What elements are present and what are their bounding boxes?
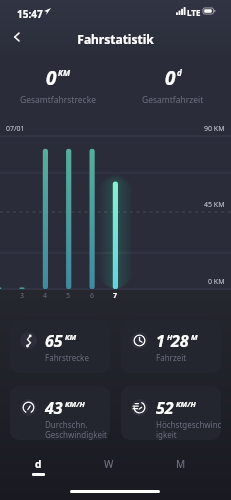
staticText: H	[167, 332, 173, 342]
staticText: 6	[90, 291, 95, 301]
staticText: 0 KM	[208, 277, 225, 287]
button[interactable]: Back	[4, 24, 30, 50]
staticText: d	[177, 67, 182, 78]
staticText: KM	[58, 67, 70, 78]
staticText: 0	[46, 65, 57, 91]
staticText: KM	[65, 332, 77, 342]
staticText: 0	[165, 65, 176, 91]
staticText: Gesamtfahrstrecke	[20, 94, 96, 106]
staticText: Höchstgeschwind igkeit	[156, 419, 221, 440]
button[interactable]: 43	[10, 386, 110, 440]
staticText: 7	[113, 291, 118, 301]
staticText: 1	[156, 330, 165, 352]
button[interactable]: W	[93, 457, 125, 473]
staticText: Durchschn. Geschwindigkeit	[45, 419, 107, 440]
button[interactable]: 52	[121, 386, 221, 440]
staticText: 3	[20, 291, 25, 301]
staticText: 07/01	[6, 124, 25, 134]
staticText: 5	[66, 291, 71, 301]
staticText: 43	[45, 397, 63, 419]
staticText: Fahrstrecke	[45, 352, 89, 363]
staticText: KM/H	[65, 399, 85, 409]
button[interactable]: 65	[10, 319, 110, 373]
staticText: 52	[156, 397, 174, 419]
staticText: Fahrzeit	[156, 352, 187, 363]
staticText: M	[191, 332, 198, 342]
staticText: 28	[171, 330, 189, 352]
staticText: 65	[45, 330, 63, 352]
staticText: W	[104, 457, 114, 471]
staticText: KM/H	[176, 399, 196, 409]
button[interactable]: d	[22, 457, 54, 476]
button[interactable]: M	[165, 457, 197, 473]
staticText: Gesamtfahrzeit	[142, 94, 204, 106]
staticText: 90 KM	[204, 124, 225, 134]
staticText: M	[176, 457, 186, 471]
staticText: d	[35, 457, 42, 471]
button[interactable]: 1	[121, 319, 221, 373]
staticText: Fahrstatistik	[0, 31, 231, 47]
staticText: 4	[43, 291, 48, 301]
staticText: LTE	[187, 7, 201, 18]
staticText: 45 KM	[204, 200, 225, 210]
staticText: 15:47	[17, 7, 43, 21]
